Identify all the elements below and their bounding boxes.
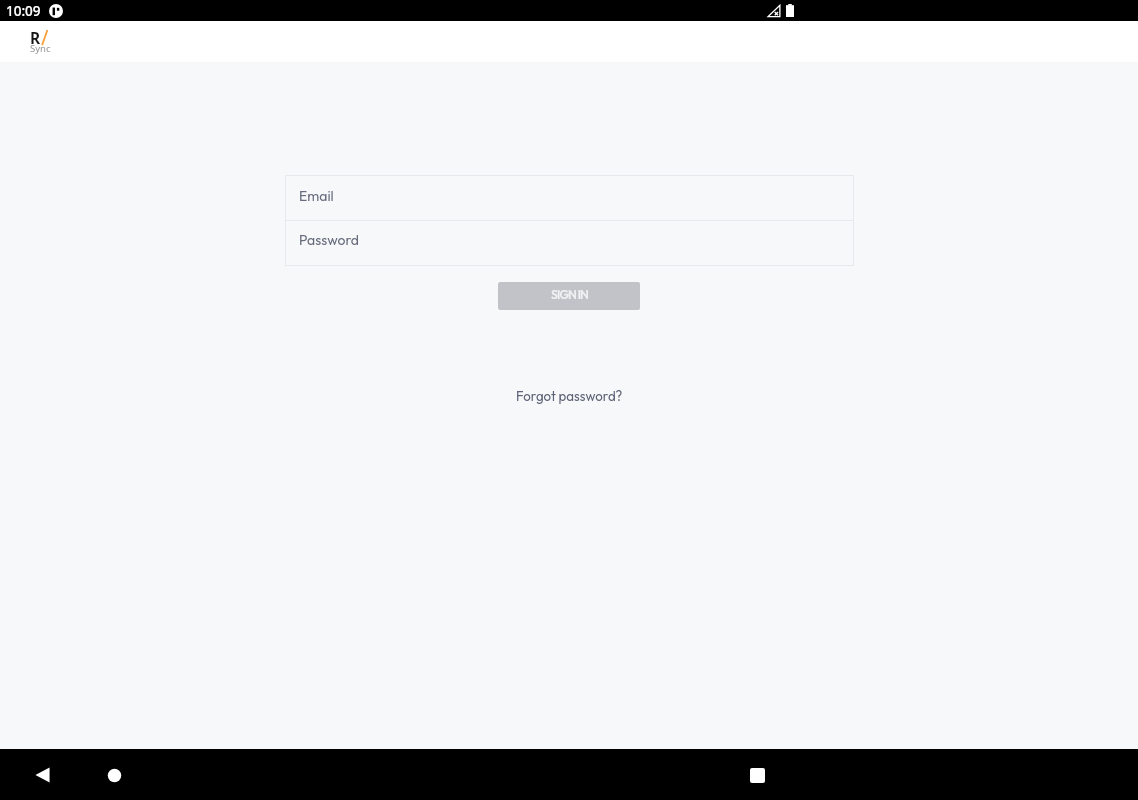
staticText: R: [30, 27, 41, 48]
button[interactable]: SIGN IN: [498, 282, 640, 310]
staticText: 10:09: [6, 2, 41, 20]
staticText: Forgot password?: [516, 388, 623, 405]
staticText: Password: [299, 231, 359, 249]
staticText: SIGN IN: [551, 287, 589, 302]
button[interactable]: Recent apps: [736, 754, 778, 796]
staticText: Sync: [30, 42, 51, 55]
button[interactable]: Password: [285, 221, 854, 266]
button[interactable]: Home: [93, 754, 135, 796]
button[interactable]: R/Sync home: [26, 26, 52, 58]
staticText: Email: [299, 187, 334, 205]
button[interactable]: Back: [21, 754, 63, 796]
button[interactable]: Forgot password?: [506, 382, 633, 411]
button[interactable]: Email: [285, 175, 854, 220]
